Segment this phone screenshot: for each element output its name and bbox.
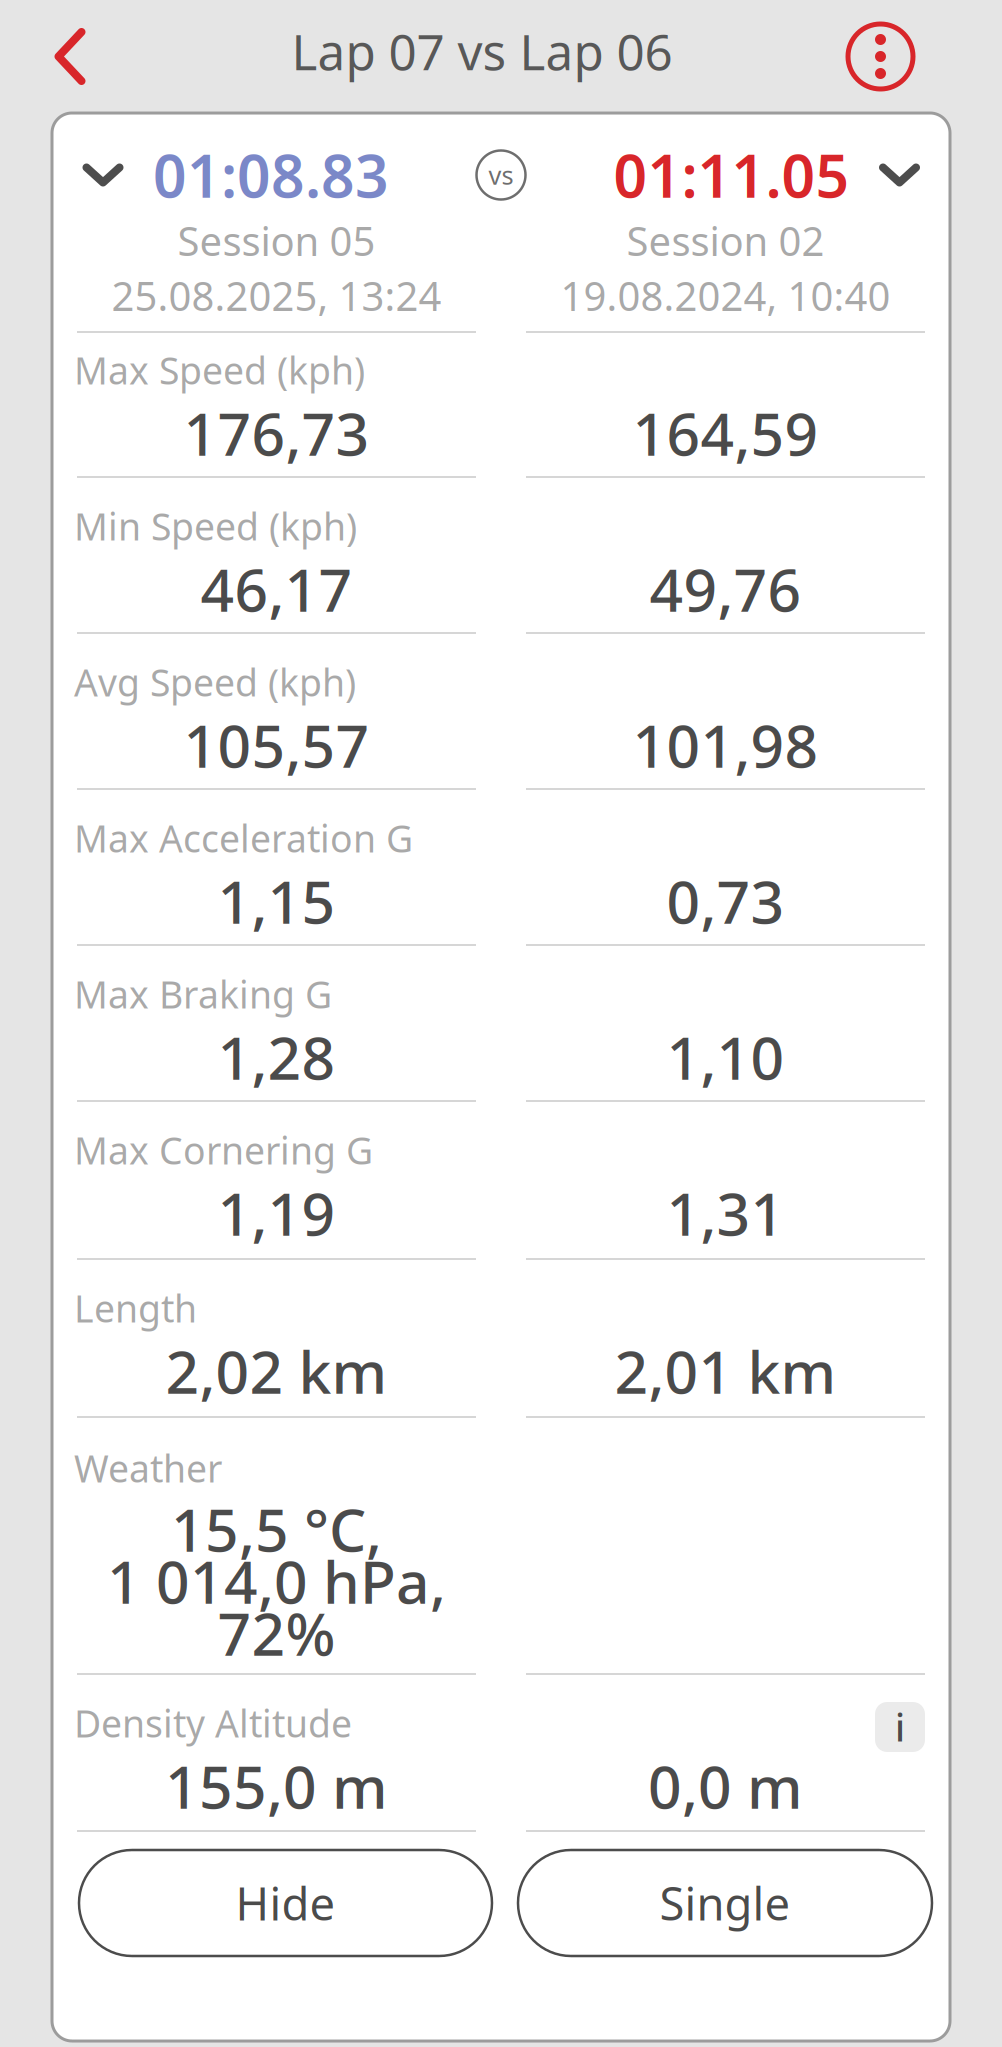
staticText: 15,5 °C, — [171, 1490, 382, 1568]
staticText: Min Speed (kph) — [74, 501, 357, 551]
staticText: 1,28 — [217, 1018, 335, 1096]
button[interactable]: Choose right lap — [874, 136, 925, 214]
staticText: Single — [659, 1873, 790, 1933]
staticText: 176,73 — [183, 394, 369, 472]
staticText: vs — [488, 158, 513, 192]
button[interactable]: Back — [18, 0, 122, 113]
staticText: Max Cornering G — [74, 1125, 373, 1175]
staticText: 25.08.2025, 13:24 — [111, 269, 441, 322]
staticText: 164,59 — [632, 394, 818, 472]
button[interactable]: More options — [824, 0, 937, 113]
staticText: 49,76 — [649, 550, 801, 628]
staticText: 1 014,0 hPa, — [107, 1542, 446, 1620]
staticText: 0,0 m — [648, 1747, 803, 1825]
staticText: 1,31 — [666, 1174, 784, 1252]
staticText: 2,02 km — [165, 1332, 387, 1410]
staticText: Max Speed (kph) — [74, 345, 365, 395]
staticText: 2,01 km — [614, 1332, 836, 1410]
staticText: i — [895, 1702, 905, 1752]
staticText: 105,57 — [183, 706, 369, 784]
staticText: Density Altitude — [74, 1698, 352, 1748]
staticText: 19.08.2024, 10:40 — [560, 269, 890, 322]
staticText: Avg Speed (kph) — [74, 657, 356, 707]
staticText: Session 05 — [177, 214, 375, 267]
button[interactable]: Hide — [79, 1850, 492, 1956]
staticText: 1,10 — [666, 1018, 784, 1096]
staticText: 01:11.05 — [613, 136, 849, 214]
staticText: 1,19 — [217, 1174, 335, 1252]
staticText: Hide — [235, 1873, 335, 1933]
staticText: Weather — [74, 1443, 222, 1493]
staticText: 01:08.83 — [153, 136, 389, 214]
staticText: Max Acceleration G — [74, 813, 413, 863]
staticText: 155,0 m — [165, 1747, 388, 1825]
staticText: Max Braking G — [74, 969, 332, 1019]
staticText: 72% — [217, 1594, 335, 1672]
staticText: 101,98 — [632, 706, 818, 784]
button[interactable]: Single — [518, 1850, 932, 1956]
staticText: Session 02 — [626, 214, 824, 267]
staticText: Length — [74, 1283, 197, 1333]
staticText: 46,17 — [200, 550, 352, 628]
staticText: Lap 07 vs Lap 06 — [291, 18, 672, 84]
button[interactable]: Info — [875, 1702, 925, 1752]
staticText: 1,15 — [217, 862, 335, 940]
staticText: 0,73 — [666, 862, 784, 940]
button[interactable]: Choose left lap — [77, 136, 129, 214]
